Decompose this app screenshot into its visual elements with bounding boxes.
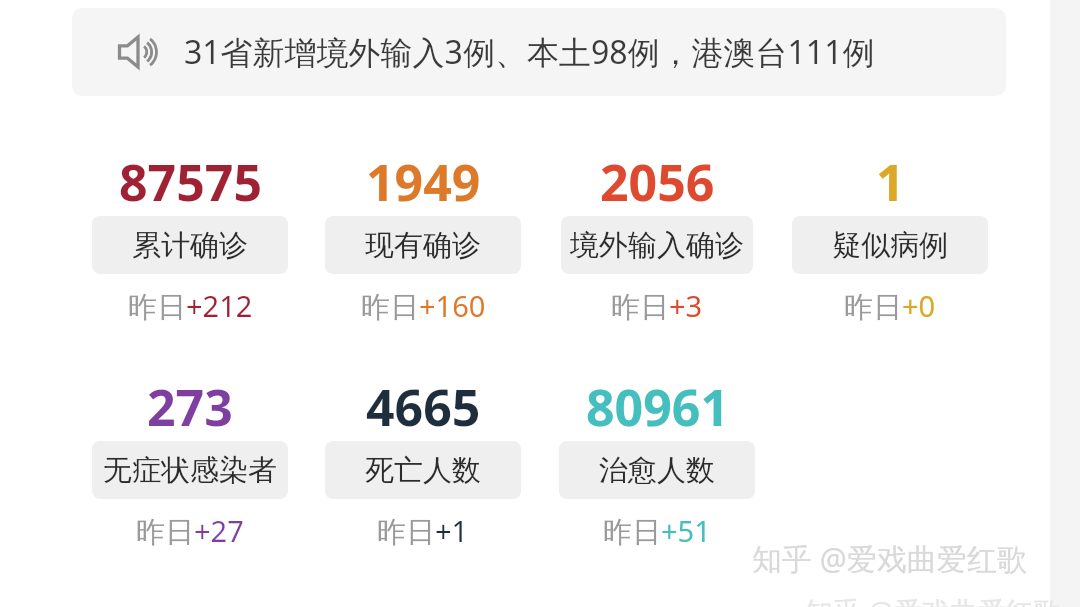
staticText: 昨日+27 [136, 511, 244, 551]
staticText: 昨日+0 [844, 286, 936, 326]
staticText: 现有确诊 [365, 227, 481, 264]
staticText: 昨日+51 [603, 511, 711, 551]
button[interactable]: 4665 [308, 373, 538, 551]
button[interactable]: 87575 [75, 148, 305, 326]
staticText: 87575 [119, 148, 262, 210]
staticText: 疑似病例 [832, 227, 948, 264]
staticText: 昨日+160 [361, 286, 486, 326]
staticText: 1949 [366, 148, 481, 210]
staticText: 2056 [600, 148, 715, 210]
staticText: 死亡人数 [365, 452, 481, 489]
staticText: 昨日+3 [611, 286, 703, 326]
staticText: 昨日+212 [128, 286, 253, 326]
button[interactable]: 2056 [542, 148, 772, 326]
button[interactable]: 1949 [308, 148, 538, 326]
staticText: 治愈人数 [599, 452, 715, 489]
button[interactable]: 80961 [542, 373, 772, 551]
staticText: 31省新增境外输入3例、本土98例，港澳台111例 [184, 30, 875, 74]
staticText: 4665 [366, 373, 481, 435]
staticText: 无症状感染者 [103, 452, 277, 489]
staticText: 1 [876, 148, 905, 210]
staticText: 知乎 @爱戏曲爱红歌 [805, 592, 1062, 607]
other: Audio announcement [114, 28, 162, 76]
button[interactable]: 273 [75, 373, 305, 551]
button[interactable]: 1 [775, 148, 1005, 326]
staticText: 知乎 @爱戏曲爱红歌 [752, 538, 1027, 579]
staticText: 273 [147, 373, 233, 435]
button[interactable]: Audio announcement [72, 8, 1006, 96]
staticText: 80961 [586, 373, 729, 435]
staticText: 累计确诊 [132, 227, 248, 264]
staticText: 境外输入确诊 [570, 227, 744, 264]
staticText: 昨日+1 [377, 511, 469, 551]
